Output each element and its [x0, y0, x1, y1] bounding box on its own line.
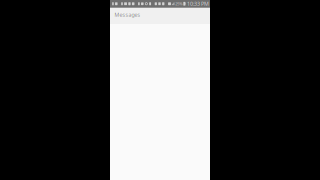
staticText: 10:33 PM [187, 0, 209, 7]
staticText: 25% [175, 1, 182, 6]
button[interactable]: Messages [110, 7, 210, 24]
staticText: Messages [114, 11, 140, 18]
